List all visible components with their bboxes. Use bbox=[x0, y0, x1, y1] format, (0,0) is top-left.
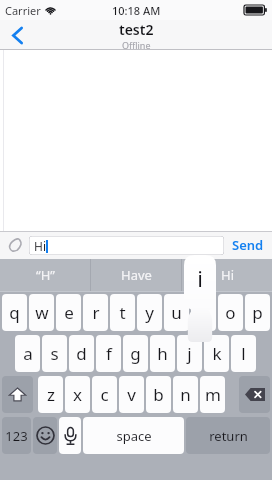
button[interactable]: x bbox=[65, 376, 90, 413]
staticText: y bbox=[145, 301, 154, 324]
button[interactable]: d bbox=[69, 335, 94, 372]
button[interactable]: j bbox=[177, 335, 202, 372]
staticText: Carrier bbox=[5, 3, 41, 18]
staticText: Hi bbox=[34, 238, 46, 254]
button[interactable]: Hi bbox=[29, 236, 224, 255]
staticText: v bbox=[127, 383, 136, 406]
button[interactable]: c bbox=[92, 376, 117, 413]
button[interactable]: return bbox=[186, 417, 270, 454]
button[interactable]: a bbox=[15, 335, 40, 372]
staticText: 10:18 AM bbox=[112, 3, 161, 18]
button[interactable]: q bbox=[2, 294, 27, 331]
staticText: Send bbox=[232, 236, 264, 254]
staticText: j bbox=[187, 342, 192, 365]
button[interactable]: e bbox=[56, 294, 81, 331]
button[interactable]: f bbox=[96, 335, 121, 372]
staticText: m bbox=[205, 383, 221, 406]
button[interactable]: w bbox=[29, 294, 54, 331]
button[interactable]: l bbox=[231, 335, 256, 372]
staticText: s bbox=[50, 342, 59, 365]
button[interactable]: y bbox=[137, 294, 162, 331]
button[interactable]: Emoji bbox=[33, 417, 57, 454]
staticText: f bbox=[106, 342, 112, 365]
button[interactable]: Send bbox=[230, 236, 266, 254]
button[interactable]: v bbox=[119, 376, 144, 413]
staticText: c bbox=[100, 383, 109, 406]
button[interactable]: Back bbox=[0, 20, 34, 50]
staticText: w bbox=[35, 301, 49, 324]
button[interactable]: i bbox=[191, 294, 216, 331]
staticText: g bbox=[130, 342, 141, 365]
button[interactable]: g bbox=[123, 335, 148, 372]
button[interactable]: n bbox=[173, 376, 198, 413]
button[interactable]: t bbox=[110, 294, 135, 331]
staticText: Hi bbox=[221, 266, 234, 284]
staticText: k bbox=[212, 342, 222, 365]
button[interactable]: u bbox=[164, 294, 189, 331]
staticText: d bbox=[76, 342, 87, 365]
button[interactable]: Attach file bbox=[6, 235, 26, 255]
button[interactable]: p bbox=[245, 294, 270, 331]
button[interactable]: z bbox=[38, 376, 63, 413]
staticText: t bbox=[119, 301, 126, 324]
staticText: u bbox=[171, 301, 182, 324]
button[interactable]: Dictation bbox=[59, 417, 81, 454]
staticText: q bbox=[9, 301, 20, 324]
button[interactable]: 123 bbox=[2, 417, 31, 454]
button[interactable]: Hi bbox=[182, 259, 272, 291]
button[interactable]: Shift bbox=[2, 376, 33, 413]
staticText: 123 bbox=[5, 427, 28, 445]
staticText: z bbox=[47, 383, 55, 406]
button[interactable]: r bbox=[83, 294, 108, 331]
staticText: e bbox=[64, 301, 74, 324]
staticText: h bbox=[157, 342, 168, 365]
staticText: b bbox=[153, 383, 164, 406]
staticText: Have bbox=[121, 266, 152, 284]
button[interactable]: space bbox=[83, 417, 184, 454]
button[interactable]: m bbox=[200, 376, 225, 413]
staticText: r bbox=[92, 301, 100, 324]
staticText: n bbox=[180, 383, 191, 406]
staticText: i bbox=[197, 263, 203, 293]
button[interactable]: Delete bbox=[239, 376, 270, 413]
staticText: a bbox=[23, 342, 33, 365]
staticText: space bbox=[116, 427, 152, 445]
button[interactable]: b bbox=[146, 376, 171, 413]
staticText: return bbox=[209, 427, 248, 445]
staticText: “H” bbox=[36, 266, 55, 284]
button[interactable]: h bbox=[150, 335, 175, 372]
staticText: Offline bbox=[122, 39, 151, 50]
button[interactable]: Have bbox=[91, 259, 181, 291]
staticText: o bbox=[225, 301, 236, 324]
staticText: l bbox=[241, 342, 246, 365]
staticText: x bbox=[73, 383, 82, 406]
staticText: p bbox=[252, 301, 263, 324]
button[interactable]: o bbox=[218, 294, 243, 331]
button[interactable]: k bbox=[204, 335, 229, 372]
button[interactable]: “H” bbox=[0, 259, 90, 291]
button[interactable]: s bbox=[42, 335, 67, 372]
staticText: test2 bbox=[119, 20, 154, 39]
